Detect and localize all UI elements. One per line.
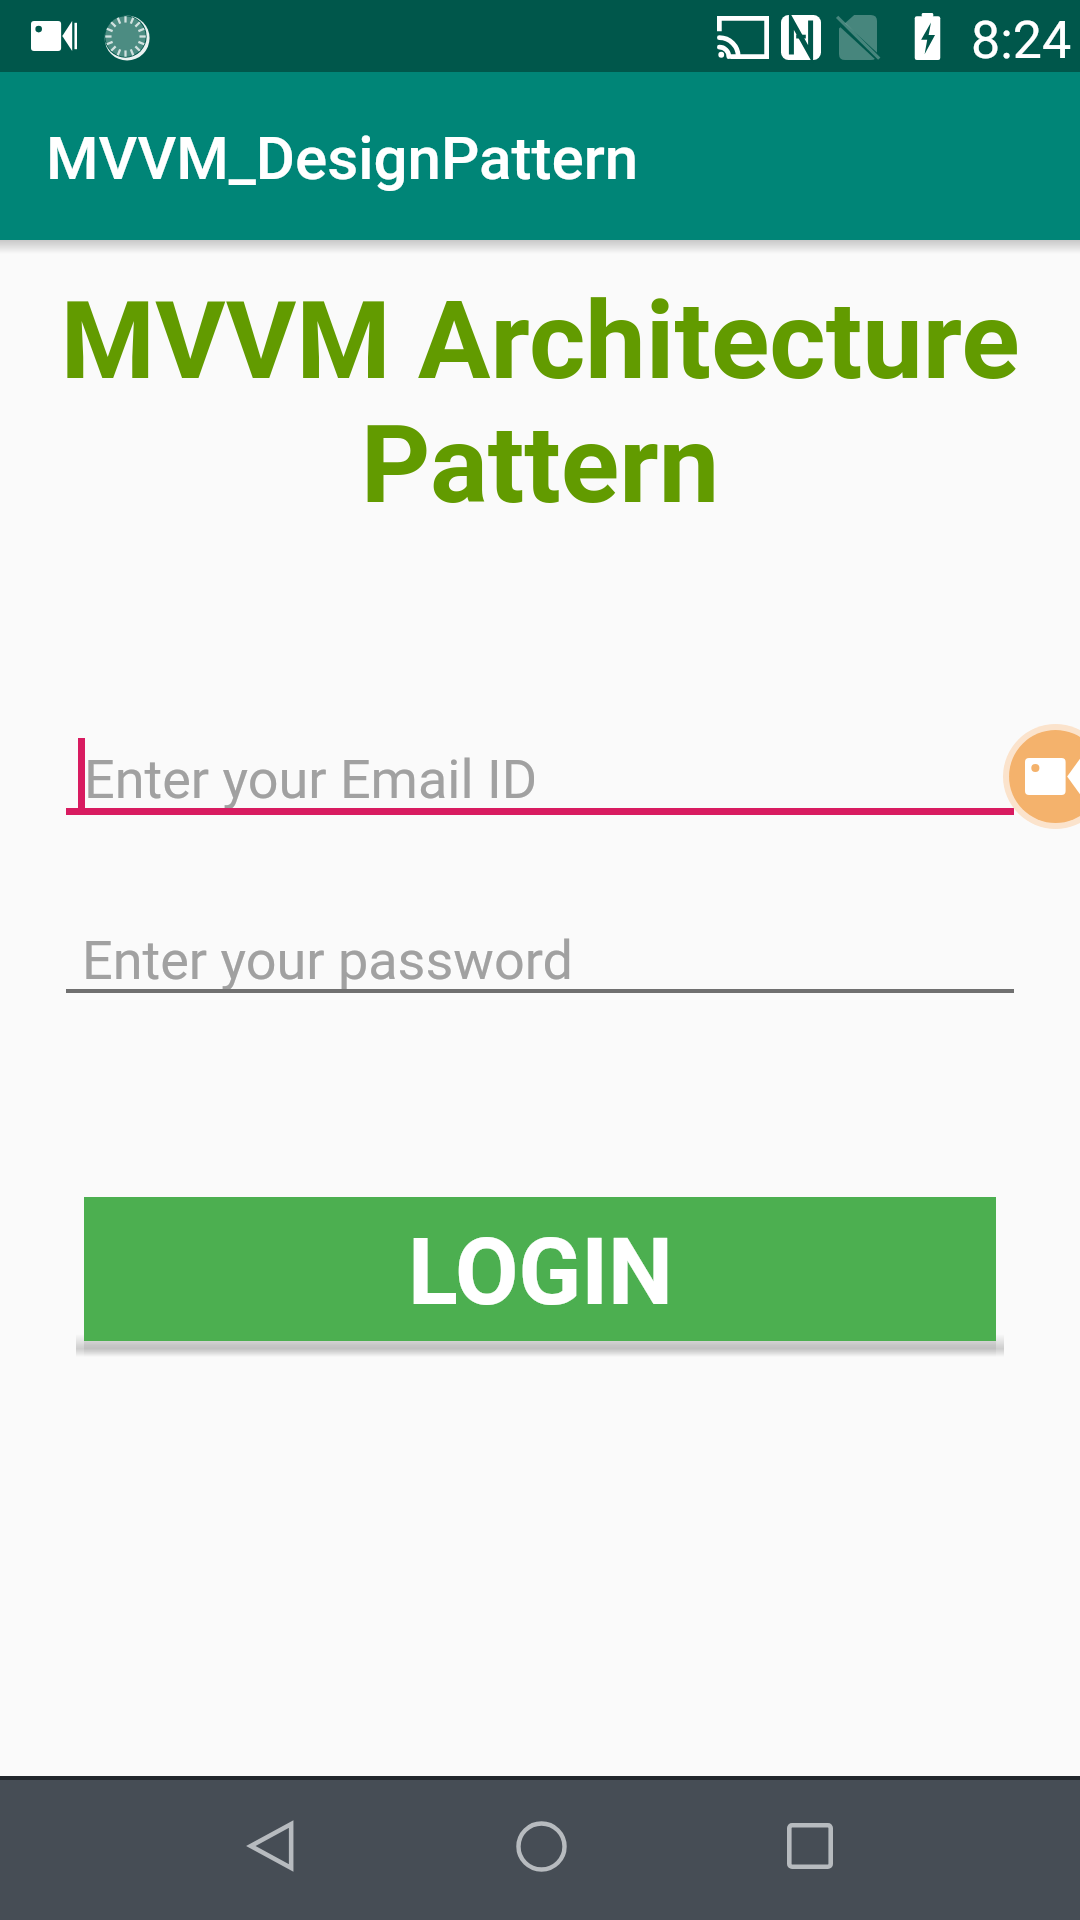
staticText: Enter your Email ID [84,748,538,811]
button[interactable]: Enter your password [66,900,1014,993]
button[interactable]: Back [199,1774,343,1918]
button[interactable]: Record screen [1003,724,1080,829]
button[interactable]: Home [469,1774,613,1918]
button[interactable]: Recent apps [738,1774,882,1918]
staticText: Enter your password [82,929,573,992]
staticText: Pattern [0,402,1080,529]
button[interactable]: LOGIN [84,1197,996,1341]
staticText: MVVM Architecture [0,278,1080,405]
staticText: LOGIN [408,1219,673,1327]
staticText: 8:24 [971,10,1072,71]
staticText: MVVM_DesignPattern [46,123,639,193]
button[interactable]: Enter your Email ID [66,722,1014,815]
